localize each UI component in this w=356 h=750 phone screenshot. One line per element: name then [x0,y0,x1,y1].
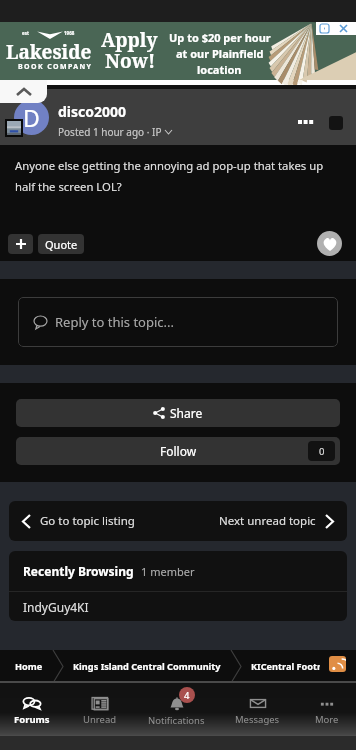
button[interactable]: Share [16,399,340,427]
staticText: Notifications [148,714,205,727]
staticText: Quote [45,237,78,252]
staticText: BOOK COMPANY [18,62,93,72]
button[interactable]: Kings Island Central Community [63,650,231,683]
button[interactable]: Unread [63,683,136,736]
staticText: Posted 1 hour ago · IP [58,125,162,139]
staticText: disco2000 [58,102,127,121]
button[interactable]: Add reaction [8,234,33,254]
button[interactable]: est [0,22,356,80]
staticText: Now! [105,48,156,74]
staticText: D [23,102,40,133]
button[interactable]: KICentral Footnotes [241,650,353,683]
staticText: 0 [319,445,325,458]
button[interactable]: Go to topic listing [9,501,148,541]
staticText: Follow [160,443,197,459]
staticText: 1 member [141,564,195,579]
button[interactable]: Like [317,231,342,256]
staticText: Kings Island Central Community [73,660,221,673]
staticText: More [315,713,339,726]
button[interactable]: More [298,683,356,736]
button[interactable]: IndyGuy4KI [9,592,347,621]
button[interactable]: Reply to this topic... [18,297,338,347]
staticText: Up to $20 per hour [169,30,271,45]
button[interactable]: Messages [217,683,298,736]
staticText: IndyGuy4KI [23,599,89,615]
button[interactable]: Next unread topic [206,501,347,541]
button[interactable]: Forums [0,683,63,736]
button[interactable]: 4 [136,683,217,736]
staticText: Unread [83,713,117,726]
staticText: Next unread topic [219,513,316,529]
button[interactable]: Follow [16,437,340,465]
staticText: at our Plainfield [176,46,264,61]
button[interactable]: Select post [329,116,343,130]
staticText: KICentral Footnotes [251,660,343,673]
staticText: half the screen LOL? [15,179,122,194]
staticText: Messages [235,713,280,726]
staticText: Lakeside [6,39,92,65]
staticText: location [197,62,242,77]
staticText: Forums [14,713,50,726]
staticText: est [22,30,29,36]
staticText: 1968 [64,30,75,36]
button[interactable]: Collapse post [0,80,47,103]
button[interactable]: RSS feed [329,656,346,672]
staticText: Home [15,660,43,673]
button[interactable]: More options [290,107,319,136]
staticText: Reply to this topic... [55,313,175,331]
staticText: Anyone else getting the annoying ad pop-… [15,158,324,173]
staticText: 4 [184,689,190,702]
staticText: Apply [101,27,158,53]
button[interactable]: Home [5,650,53,683]
button[interactable]: Close ad [316,22,356,35]
button[interactable]: Quote [38,234,84,254]
staticText: Go to topic listing [40,513,135,529]
staticText: Share [170,405,203,421]
staticText: Recently Browsing [23,563,134,579]
